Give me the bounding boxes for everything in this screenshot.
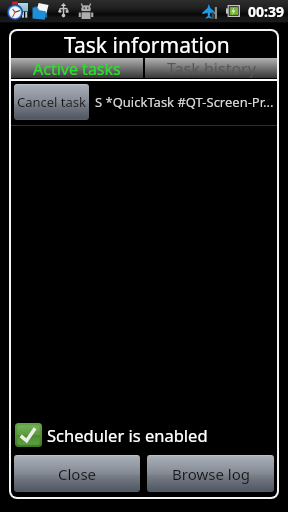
staticText: Close bbox=[58, 464, 97, 484]
button[interactable]: Close bbox=[14, 455, 140, 492]
staticText: Cancel task bbox=[17, 93, 87, 111]
button[interactable]: Active tasks bbox=[11, 58, 143, 78]
button[interactable]: Browse log bbox=[147, 455, 274, 492]
button[interactable]: Task history bbox=[145, 58, 277, 78]
staticText: Scheduler is enabled bbox=[47, 424, 208, 446]
staticText: Task information bbox=[64, 31, 230, 57]
staticText: Active tasks bbox=[33, 58, 121, 78]
button[interactable]: Cancel task bbox=[14, 84, 89, 120]
staticText: 00:39 bbox=[248, 2, 284, 21]
staticText: Task history bbox=[167, 58, 256, 78]
staticText: Browse log bbox=[172, 464, 250, 484]
button[interactable]: Scheduler is enabled bbox=[11, 419, 277, 451]
staticText: S *QuickTask #QT-Screen-Pr... bbox=[95, 93, 274, 111]
